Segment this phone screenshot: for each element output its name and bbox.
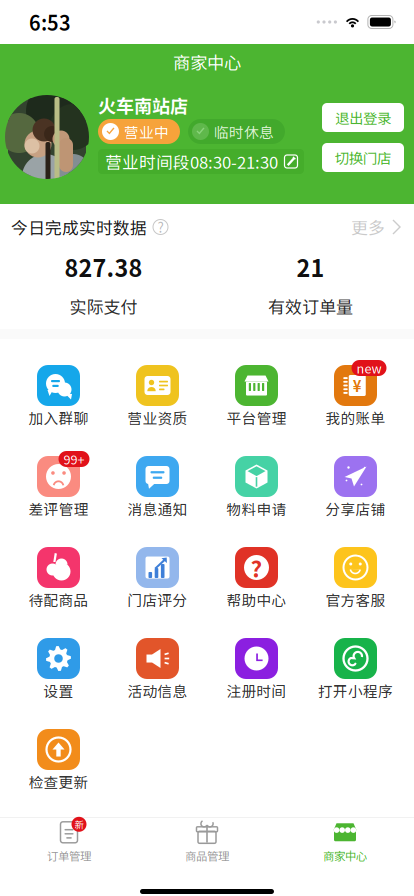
button[interactable]: 商品管理: [138, 820, 276, 864]
staticText: 实际支付: [69, 294, 137, 318]
button[interactable]: 活动信息: [108, 638, 207, 729]
staticText: 检查更新: [28, 771, 88, 792]
staticText: 打开小程序: [318, 680, 393, 701]
button[interactable]: 官方客服: [306, 547, 405, 638]
staticText: ?: [157, 217, 163, 237]
staticText: ?: [250, 551, 262, 584]
button[interactable]: 设置: [9, 638, 108, 729]
staticText: 商家中心: [323, 847, 367, 864]
staticText: 待配商品: [28, 589, 88, 610]
button[interactable]: 99+: [9, 456, 108, 547]
staticText: 827.38: [64, 250, 142, 284]
staticText: 营业时间段08:30-21:30: [105, 149, 278, 173]
staticText: 我的账单: [325, 407, 385, 428]
button[interactable]: 消息通知: [108, 456, 207, 547]
staticText: 今日完成实时数据: [11, 215, 147, 239]
button[interactable]: 退出登录: [322, 103, 404, 132]
button[interactable]: 注册时间: [207, 638, 306, 729]
staticText: ¥: [353, 375, 362, 396]
staticText: 物料申请: [226, 498, 286, 519]
button[interactable]: 分享店铺: [306, 456, 405, 547]
button[interactable]: 营业中: [98, 119, 180, 144]
staticText: 99+: [63, 450, 84, 468]
button[interactable]: 新: [0, 820, 138, 864]
staticText: 21: [296, 250, 324, 284]
button[interactable]: 打开小程序: [306, 638, 405, 729]
staticText: 营业资质: [127, 407, 187, 428]
staticText: new: [356, 359, 381, 377]
staticText: 差评管理: [28, 498, 88, 519]
button[interactable]: 商家中心: [276, 820, 414, 864]
button[interactable]: 加入群聊: [9, 365, 108, 456]
button[interactable]: 物料申请: [207, 456, 306, 547]
staticText: 设置: [43, 680, 73, 701]
button[interactable]: 营业资质: [108, 365, 207, 456]
staticText: 临时休息: [214, 121, 274, 142]
staticText: 消息通知: [127, 498, 187, 519]
staticText: 营业中: [124, 121, 169, 142]
staticText: 订单管理: [47, 847, 91, 864]
staticText: 官方客服: [325, 589, 385, 610]
button[interactable]: 平台管理: [207, 365, 306, 456]
button[interactable]: 待配商品: [9, 547, 108, 638]
staticText: 更多: [351, 215, 385, 239]
staticText: 门店评分: [127, 589, 187, 610]
staticText: 6:53: [29, 7, 71, 36]
staticText: 火车南站店: [98, 92, 188, 118]
button[interactable]: 检查更新: [9, 729, 108, 820]
staticText: 退出登录: [335, 107, 391, 128]
button[interactable]: 切换门店: [322, 143, 404, 172]
staticText: 帮助中心: [226, 589, 286, 610]
button[interactable]: 门店评分: [108, 547, 207, 638]
staticText: 加入群聊: [28, 407, 88, 428]
staticText: 注册时间: [226, 680, 286, 701]
button[interactable]: 更多: [351, 215, 401, 239]
button[interactable]: 临时休息: [188, 119, 285, 144]
staticText: 商家中心: [173, 49, 241, 75]
staticText: 活动信息: [127, 680, 187, 701]
staticText: 新: [74, 817, 83, 831]
button[interactable]: ¥: [306, 365, 405, 456]
staticText: 切换门店: [335, 147, 391, 168]
staticText: 有效订单量: [268, 294, 353, 318]
staticText: 分享店铺: [325, 498, 385, 519]
staticText: 商品管理: [185, 847, 229, 864]
button[interactable]: 营业时间段08:30-21:30: [98, 149, 304, 174]
staticText: 平台管理: [226, 407, 286, 428]
button[interactable]: ?: [207, 547, 306, 638]
